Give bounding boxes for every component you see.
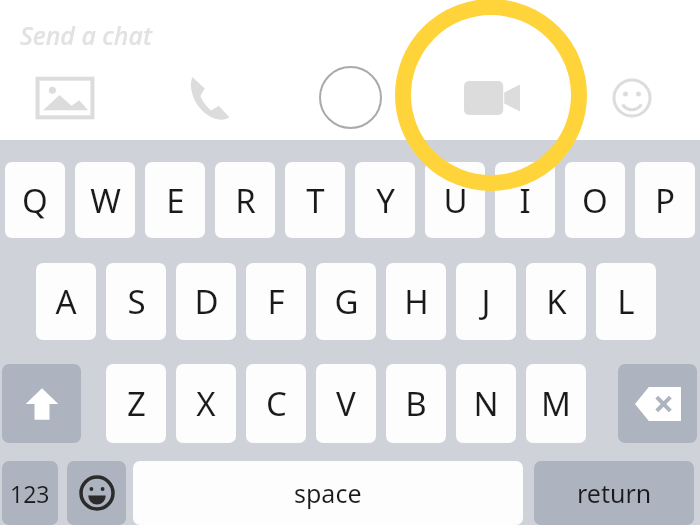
staticText: L bbox=[617, 279, 635, 324]
button[interactable]: B bbox=[386, 364, 446, 443]
staticText: M bbox=[541, 381, 571, 426]
button[interactable]: K bbox=[526, 263, 586, 340]
staticText: C bbox=[266, 381, 287, 426]
button[interactable]: space bbox=[133, 461, 523, 525]
staticText: 123 bbox=[10, 478, 50, 509]
button[interactable]: Send photo bbox=[34, 70, 96, 126]
button[interactable]: T bbox=[285, 162, 345, 238]
button[interactable]: R bbox=[215, 162, 275, 238]
button[interactable]: Y bbox=[355, 162, 415, 238]
button[interactable]: M bbox=[526, 364, 586, 443]
staticText: N bbox=[473, 381, 499, 426]
button[interactable]: V bbox=[316, 364, 376, 443]
staticText: K bbox=[546, 279, 567, 324]
staticText: A bbox=[55, 279, 77, 324]
staticText: R bbox=[235, 178, 256, 223]
button[interactable]: W bbox=[75, 162, 135, 238]
button[interactable]: L bbox=[596, 263, 656, 340]
button[interactable]: C bbox=[246, 364, 306, 443]
staticText: P bbox=[655, 178, 675, 223]
staticText: E bbox=[166, 178, 185, 223]
button[interactable]: P bbox=[635, 162, 695, 238]
staticText: D bbox=[194, 279, 219, 324]
staticText: J bbox=[481, 279, 491, 324]
staticText: T bbox=[306, 178, 325, 223]
staticText: I bbox=[519, 178, 531, 223]
button[interactable]: Call bbox=[180, 68, 240, 128]
button[interactable]: X bbox=[176, 364, 236, 443]
staticText: Q bbox=[22, 178, 48, 223]
staticText: G bbox=[334, 279, 359, 324]
button[interactable]: Backspace bbox=[618, 364, 697, 443]
button[interactable]: Capture bbox=[319, 66, 382, 129]
button[interactable]: J bbox=[456, 263, 516, 340]
staticText: Y bbox=[376, 178, 395, 223]
button[interactable]: Stickers bbox=[612, 78, 652, 118]
staticText: F bbox=[267, 279, 285, 324]
button[interactable]: G bbox=[316, 263, 376, 340]
staticText: space bbox=[294, 476, 362, 510]
button[interactable]: N bbox=[456, 364, 516, 443]
button[interactable]: Z bbox=[106, 364, 166, 443]
button[interactable]: I bbox=[495, 162, 555, 238]
staticText: O bbox=[582, 178, 608, 223]
staticText: U bbox=[443, 178, 468, 223]
staticText: V bbox=[336, 381, 356, 426]
button[interactable]: O bbox=[565, 162, 625, 238]
button[interactable]: H bbox=[386, 263, 446, 340]
staticText: return bbox=[577, 476, 652, 510]
button[interactable]: Emoji bbox=[67, 461, 126, 525]
button[interactable]: E bbox=[145, 162, 205, 238]
staticText: S bbox=[127, 279, 146, 324]
staticText: W bbox=[90, 178, 121, 223]
button[interactable]: Q bbox=[5, 162, 65, 238]
button[interactable]: return bbox=[534, 461, 694, 525]
button[interactable]: 123 bbox=[2, 461, 58, 525]
staticText: Z bbox=[127, 381, 146, 426]
button[interactable]: S bbox=[106, 263, 166, 340]
staticText: H bbox=[404, 279, 429, 324]
button[interactable]: Shift bbox=[2, 364, 81, 443]
button[interactable]: Video call bbox=[462, 78, 522, 118]
button[interactable]: A bbox=[36, 263, 96, 340]
button[interactable]: U bbox=[425, 162, 485, 238]
button[interactable]: F bbox=[246, 263, 306, 340]
staticText: Send a chat bbox=[20, 18, 152, 52]
staticText: B bbox=[405, 381, 427, 426]
button[interactable]: D bbox=[176, 263, 236, 340]
staticText: X bbox=[196, 381, 216, 426]
